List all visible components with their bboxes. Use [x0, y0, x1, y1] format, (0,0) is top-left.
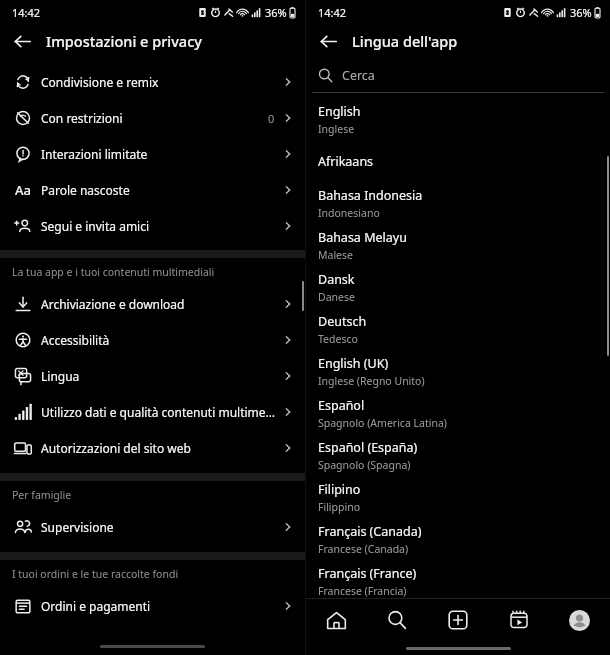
staticText: English	[318, 103, 361, 120]
staticText: Interazioni limitate	[41, 146, 281, 162]
staticText: Filippino	[318, 500, 361, 514]
staticText: Tedesco	[318, 332, 358, 346]
button[interactable]: Reel	[488, 599, 549, 641]
button[interactable]: Español	[306, 392, 610, 434]
staticText: Filipino	[318, 481, 361, 498]
button[interactable]: Interazioni limitate	[0, 136, 305, 172]
staticText: 14:42	[318, 5, 347, 20]
staticText: Afrikaans	[318, 153, 374, 170]
staticText: Spagnolo (Spagna)	[318, 458, 411, 472]
staticText: Supervisione	[41, 519, 281, 535]
staticText: Archiviazione e download	[41, 296, 281, 312]
staticText: Parole nascoste	[41, 182, 281, 198]
staticText: Aa	[15, 181, 31, 199]
button[interactable]: Profilo	[549, 599, 610, 641]
staticText: Dansk	[318, 271, 355, 288]
staticText: Malese	[318, 248, 353, 262]
button[interactable]: Supervisione	[0, 509, 305, 545]
staticText: 0	[268, 111, 275, 126]
button[interactable]: Cerca	[366, 599, 427, 641]
button[interactable]: Dansk	[306, 266, 610, 308]
button[interactable]: Hrvatski	[306, 602, 610, 644]
button[interactable]: Afrikaans	[306, 140, 610, 182]
staticText: Condivisione e remix	[41, 74, 281, 90]
staticText: Francese (Francia)	[318, 584, 407, 598]
staticText: Per famiglie	[12, 488, 72, 502]
button[interactable]: Crea	[427, 599, 488, 641]
button[interactable]: Accessibilità	[0, 322, 305, 358]
button[interactable]: Français (Canada)	[306, 518, 610, 560]
staticText: Segui e invita amici	[41, 218, 281, 234]
button[interactable]: Indietro	[316, 29, 340, 53]
staticText: Français (Canada)	[318, 523, 422, 540]
button[interactable]: Archiviazione e download	[0, 286, 305, 322]
staticText: Bahasa Indonesia	[318, 187, 423, 204]
staticText: Hrvatski	[318, 607, 367, 624]
staticText: Croato	[318, 626, 352, 640]
staticText: Autorizzazioni del sito web	[41, 440, 281, 456]
button[interactable]: Bahasa Indonesia	[306, 182, 610, 224]
staticText: Deutsch	[318, 313, 367, 330]
staticText: Lingua	[41, 368, 281, 384]
staticText: 36%	[265, 5, 287, 20]
button[interactable]: Autorizzazioni del sito web	[0, 430, 305, 466]
button[interactable]: Español (España)	[306, 434, 610, 476]
button[interactable]: Indietro	[10, 29, 34, 53]
staticText: English (UK)	[318, 355, 389, 372]
staticText: Indonesiano	[318, 206, 380, 220]
button[interactable]: Home	[306, 599, 366, 641]
button[interactable]: English (UK)	[306, 350, 610, 392]
staticText: Español (España)	[318, 439, 418, 456]
staticText: Cerca	[342, 67, 375, 84]
staticText: Danese	[318, 290, 355, 304]
button[interactable]: Segui e invita amici	[0, 208, 305, 244]
staticText: Inglese	[318, 122, 355, 136]
button[interactable]: Utilizzo dati e qualità contenuti multim…	[0, 394, 305, 430]
staticText: I tuoi ordini e le tue raccolte fondi	[12, 567, 179, 581]
staticText: Con restrizioni	[41, 110, 268, 126]
staticText: 36%	[570, 5, 592, 20]
staticText: Spagnolo (America Latina)	[318, 416, 447, 430]
staticText: Ordini e pagamenti	[41, 598, 281, 614]
button[interactable]: Aa	[0, 172, 305, 208]
button[interactable]: Deutsch	[306, 308, 610, 350]
staticText: Français (France)	[318, 565, 417, 582]
button[interactable]: Condivisione e remix	[0, 64, 305, 100]
button[interactable]: Lingua	[0, 358, 305, 394]
button[interactable]: Bahasa Melayu	[306, 224, 610, 266]
staticText: Utilizzo dati e qualità contenuti multim…	[41, 404, 281, 420]
staticText: Lingua dell'app	[352, 31, 458, 51]
staticText: Español	[318, 397, 365, 414]
staticText: 14:42	[12, 5, 41, 20]
button[interactable]: Con restrizioni	[0, 100, 305, 136]
staticText: Impostazioni e privacy	[46, 31, 202, 51]
staticText: Accessibilità	[41, 332, 281, 348]
staticText: Inglese (Regno Unito)	[318, 374, 425, 388]
staticText: Bahasa Melayu	[318, 229, 407, 246]
button[interactable]: Filipino	[306, 476, 610, 518]
staticText: Francese (Canada)	[318, 542, 409, 556]
button[interactable]: Cerca	[306, 58, 610, 92]
button[interactable]: Français (France)	[306, 560, 610, 602]
staticText: La tua app e i tuoi contenuti multimedia…	[12, 265, 215, 279]
button[interactable]: Ordini e pagamenti	[0, 588, 305, 624]
button[interactable]: English	[306, 98, 610, 140]
